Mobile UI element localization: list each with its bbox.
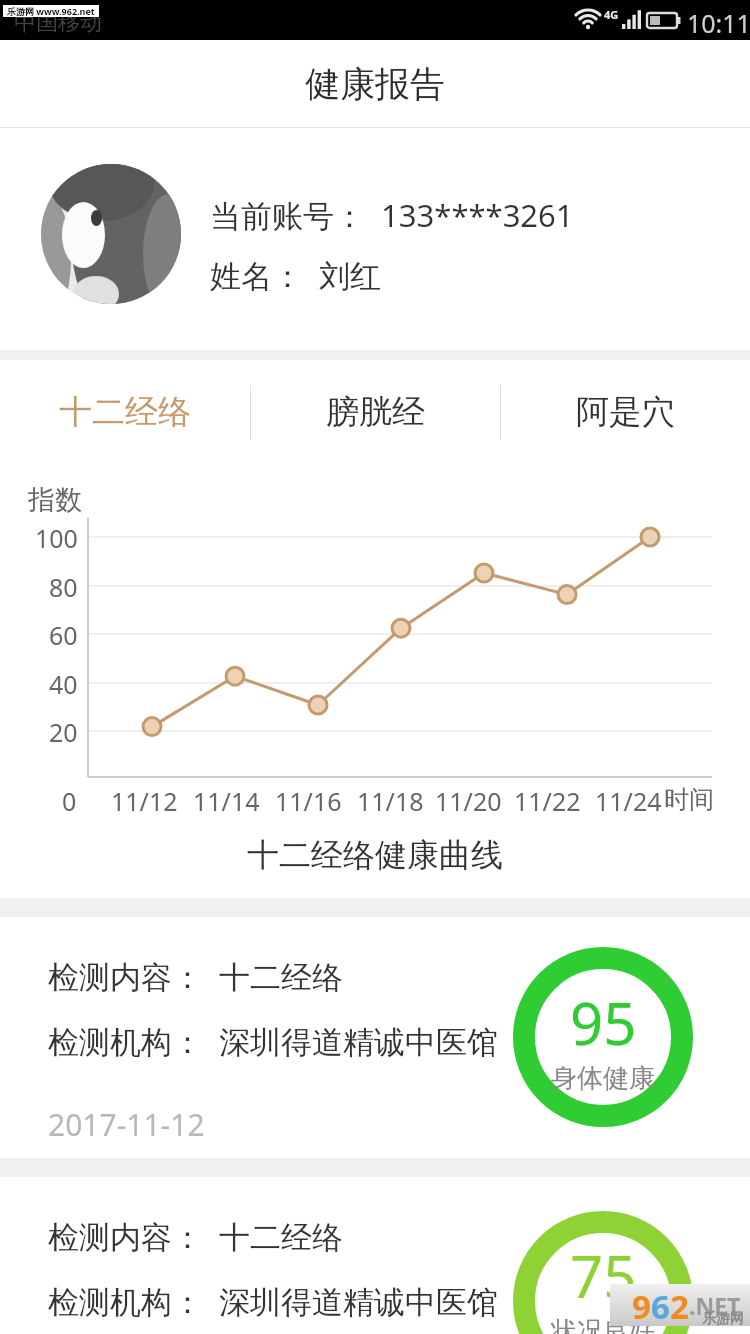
- staticText: 时间: [664, 784, 714, 815]
- staticText: 75: [570, 1236, 637, 1315]
- staticText: 姓名： 刘红: [210, 254, 382, 296]
- staticText: 100: [35, 521, 78, 555]
- button[interactable]: 阿是穴: [501, 360, 750, 450]
- staticText: 乐游网: [702, 1310, 744, 1328]
- button[interactable]: 检测内容： 十二经络: [0, 917, 750, 1158]
- staticText: 9: [632, 1284, 651, 1326]
- staticText: 检测机构： 深圳得道精诚中医馆: [48, 1280, 499, 1322]
- staticText: 检测内容： 十二经络: [48, 955, 344, 997]
- staticText: 2: [670, 1284, 689, 1326]
- staticText: .NET: [689, 1290, 741, 1321]
- staticText: 11/16: [275, 784, 342, 818]
- staticText: 指数: [28, 483, 82, 517]
- staticText: 乐游网 www.962.net: [7, 5, 95, 17]
- staticText: 95: [570, 983, 637, 1062]
- staticText: 6: [651, 1284, 670, 1326]
- staticText: 11/14: [193, 784, 260, 818]
- staticText: 40: [49, 667, 78, 701]
- staticText: 检测机构： 深圳得道精诚中医馆: [48, 1020, 499, 1062]
- staticText: 0: [62, 784, 77, 818]
- staticText: 十二经络健康曲线: [247, 835, 503, 875]
- button[interactable]: 十二经络: [0, 360, 250, 450]
- staticText: 当前账号： 133****3261: [210, 194, 574, 236]
- staticText: 11/12: [111, 784, 178, 818]
- staticText: 11/18: [357, 784, 424, 818]
- staticText: 膀胱经: [326, 391, 425, 433]
- staticText: 80: [49, 570, 78, 604]
- button[interactable]: 膀胱经: [251, 360, 500, 450]
- staticText: 10:11: [687, 6, 750, 40]
- staticText: 60: [49, 618, 78, 652]
- staticText: 4G: [604, 7, 619, 22]
- staticText: 2017-11-12: [48, 1104, 205, 1145]
- staticText: 十二经络: [59, 391, 191, 433]
- staticText: 阿是穴: [576, 391, 675, 433]
- staticText: 11/20: [435, 784, 502, 818]
- staticText: 20: [49, 715, 78, 749]
- staticText: 11/22: [514, 784, 581, 818]
- staticText: 状况良好: [551, 1315, 655, 1334]
- staticText: 身体健康: [551, 1062, 655, 1095]
- staticText: 健康报告: [305, 62, 445, 106]
- button[interactable]: 检测内容： 十二经络: [0, 1177, 750, 1334]
- staticText: 中国移动: [14, 9, 102, 37]
- staticText: 11/24: [595, 784, 662, 818]
- staticText: 检测内容： 十二经络: [48, 1215, 344, 1257]
